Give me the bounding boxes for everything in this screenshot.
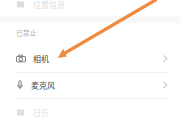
button[interactable]: 相机	[0, 45, 180, 72]
button[interactable]: 位置信息	[0, 0, 180, 10]
staticText: 日历	[33, 107, 49, 118]
staticText: 相机	[33, 53, 49, 64]
button[interactable]: 日历	[0, 107, 180, 118]
staticText: 已禁止	[16, 28, 37, 37]
button[interactable]: 麦克风	[0, 72, 180, 98]
staticText: 位置信息	[33, 0, 65, 10]
staticText: 麦克风	[31, 79, 55, 91]
